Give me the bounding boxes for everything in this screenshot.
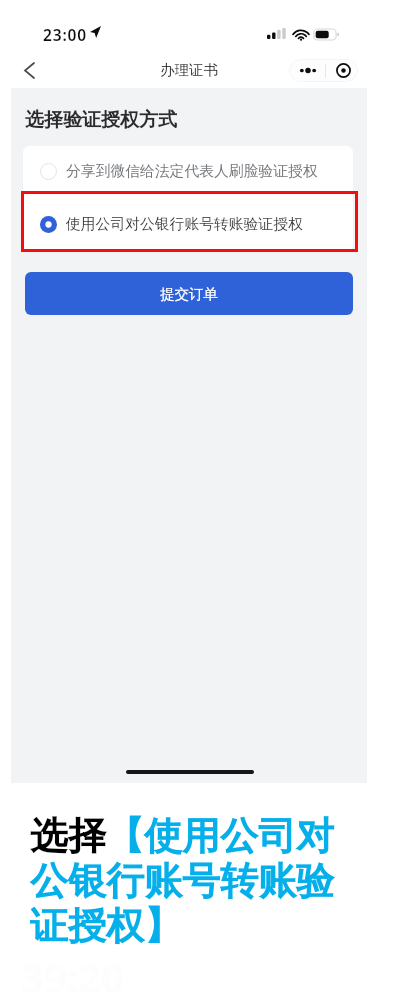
staticText: 提交订单 xyxy=(160,285,218,303)
button[interactable]: 使用公司对公银行账号转账验证授权 xyxy=(23,198,353,250)
staticText: 选择【使用公司对公银行账号转账验证授权】 xyxy=(30,812,345,950)
staticText: 使用公司对公银行账号转账验证授权 xyxy=(66,215,303,234)
staticText: 办理证书 xyxy=(160,61,218,79)
staticText: 分享到微信给法定代表人刷脸验证授权 xyxy=(66,162,318,181)
staticText: 选择验证授权方式 xyxy=(25,108,177,132)
button[interactable]: 分享到微信给法定代表人刷脸验证授权 xyxy=(23,146,353,198)
button[interactable]: 提交订单 xyxy=(25,272,353,315)
button[interactable]: More options xyxy=(289,59,358,82)
button[interactable]: Back xyxy=(11,52,48,88)
staticText: 23:00 xyxy=(43,24,87,45)
